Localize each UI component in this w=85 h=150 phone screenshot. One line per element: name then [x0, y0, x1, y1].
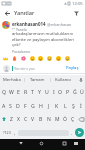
button[interactable]: P: [64, 84, 71, 98]
staticText: W: [9, 88, 14, 95]
button[interactable]: Ü: [78, 84, 85, 98]
button[interactable]: Emoji: [2, 55, 9, 62]
button[interactable]: Hide keyboard: [17, 139, 25, 147]
button[interactable]: T: [29, 84, 36, 98]
staticText: J: [48, 102, 50, 109]
button[interactable]: G: [29, 98, 37, 112]
button[interactable]: Shift: [0, 112, 8, 126]
button[interactable]: E: [15, 84, 22, 98]
button[interactable]: R: [22, 84, 29, 98]
staticText: Y: [38, 88, 41, 95]
button[interactable]: L: [61, 98, 69, 112]
button[interactable]: Backspace: [77, 112, 85, 126]
button[interactable]: I: [50, 84, 57, 98]
staticText: O: [58, 88, 63, 95]
button[interactable]: A: [0, 98, 7, 112]
button[interactable]: Emoji: [37, 55, 44, 62]
staticText: R: [24, 88, 28, 95]
staticText: S: [9, 102, 12, 109]
button[interactable]: C: [22, 112, 29, 126]
staticText: ,: [14, 130, 16, 136]
button[interactable]: O: [57, 84, 64, 98]
button[interactable]: N: [45, 112, 53, 126]
button[interactable]: Emoji: [20, 55, 27, 62]
button[interactable]: Back: [3, 9, 12, 18]
button[interactable]: Z: [8, 112, 15, 126]
staticText: Ç: [71, 116, 75, 123]
button[interactable]: Ç: [69, 112, 77, 126]
staticText: Ğ: [73, 88, 77, 95]
staticText: Tamam: [30, 77, 45, 83]
button[interactable]: Ğ: [71, 84, 78, 98]
button[interactable]: K: [53, 98, 61, 112]
staticText: V: [31, 116, 35, 123]
staticText: ↩: [12, 27, 15, 31]
staticText: Ü: [80, 88, 84, 95]
button[interactable]: Emoji: [11, 55, 18, 62]
button[interactable]: W: [8, 84, 15, 98]
staticText: Z: [10, 116, 13, 123]
button[interactable]: J: [45, 98, 53, 112]
button[interactable]: B: [37, 112, 45, 126]
button[interactable]: V: [29, 112, 37, 126]
button[interactable]: Merhaba: [0, 75, 24, 84]
staticText: N: [47, 116, 51, 123]
button[interactable]: Tamam: [25, 75, 50, 84]
button[interactable]: İ: [77, 98, 85, 112]
staticText: F: [24, 102, 27, 109]
staticText: C: [24, 116, 28, 123]
button[interactable]: Ö: [61, 112, 69, 126]
button[interactable]: Emoji: [46, 55, 53, 62]
button[interactable]: X: [15, 112, 22, 126]
staticText: arkadaşlarımızın mutluluklarını elbette …: [12, 31, 81, 47]
staticText: .: [71, 130, 73, 136]
staticText: T: [31, 88, 34, 95]
button[interactable]: S: [7, 98, 14, 112]
button[interactable]: Emoji: [64, 55, 71, 62]
staticText: Ö: [63, 116, 67, 123]
staticText: Yanıtlar: [14, 9, 35, 17]
staticText: K: [55, 102, 59, 109]
staticText: X: [17, 116, 20, 123]
staticText: Yanıtını yaz: [14, 66, 35, 71]
staticText: H: [39, 102, 43, 109]
button[interactable]: Kullanıcı: [51, 75, 76, 84]
button[interactable]: Voice input: [76, 75, 85, 84]
button[interactable]: Switch keyboard: [72, 139, 80, 147]
button[interactable]: U: [43, 84, 50, 98]
staticText: Q: [2, 88, 7, 95]
staticText: ?123: [3, 130, 11, 135]
button[interactable]: Recents: [60, 139, 68, 147]
staticText: Kullanıcı: [55, 77, 72, 83]
button[interactable]: Filter: [72, 9, 81, 18]
button[interactable]: Home: [37, 139, 45, 147]
button[interactable]: Q: [0, 84, 8, 98]
button[interactable]: Emoji: [29, 55, 36, 62]
staticText: @erkanhasan: [47, 22, 72, 27]
staticText: B: [39, 116, 43, 123]
staticText: P: [66, 88, 70, 95]
button[interactable]: D: [14, 98, 21, 112]
button[interactable]: Y: [36, 84, 43, 98]
staticText: erkanhasan014: [12, 21, 46, 27]
button[interactable]: F: [21, 98, 29, 112]
button[interactable]: H: [37, 98, 45, 112]
button[interactable]: Paylaş: [64, 63, 81, 73]
staticText: 12:05: [72, 1, 83, 7]
button[interactable]: Yanıtını yaz: [12, 66, 64, 71]
staticText: Paylaş: [66, 65, 79, 71]
button[interactable]: .: [69, 126, 75, 139]
button[interactable]: Ş: [69, 98, 77, 112]
button[interactable]: Send: [75, 128, 84, 137]
button[interactable]: M: [53, 112, 61, 126]
button[interactable]: ,: [12, 126, 18, 139]
button[interactable]: Emoji: [55, 55, 62, 62]
staticText: I: [53, 88, 55, 95]
staticText: G: [31, 102, 35, 109]
staticText: Ş: [72, 102, 75, 109]
button[interactable]: ?123: [1, 126, 12, 139]
staticText: L: [64, 102, 67, 109]
staticText: M: [55, 116, 60, 123]
staticText: Yanıtla: [16, 27, 27, 31]
